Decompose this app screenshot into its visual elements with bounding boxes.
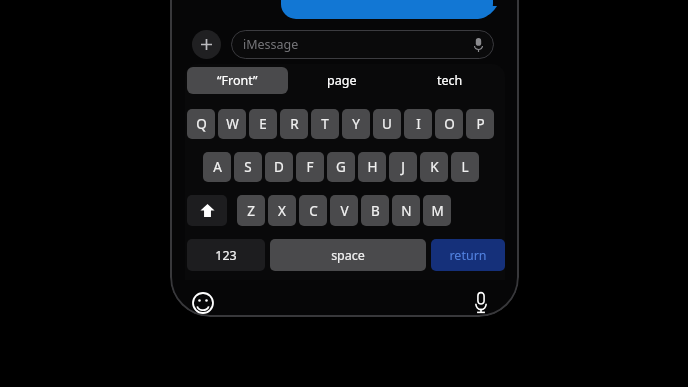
staticText: S [244, 158, 252, 176]
button[interactable]: “Front” [187, 67, 288, 94]
button[interactable]: H [358, 152, 386, 182]
button[interactable]: Add attachment [192, 30, 221, 59]
staticText: R [290, 115, 299, 133]
staticText: E [259, 115, 267, 133]
staticText: C [309, 202, 318, 220]
button[interactable]: R [280, 109, 308, 139]
staticText: M [431, 202, 444, 220]
staticText: D [274, 158, 284, 176]
button[interactable]: V [330, 195, 358, 226]
staticText: J [401, 158, 405, 176]
staticText: L [461, 158, 469, 176]
staticText: G [336, 158, 346, 176]
staticText: return [449, 247, 487, 264]
staticText: Q [196, 115, 207, 133]
staticText: U [382, 115, 392, 133]
staticText: iMessage [243, 36, 299, 53]
button[interactable]: 123 [187, 239, 265, 271]
staticText: “Front” [217, 72, 258, 89]
button[interactable]: O [435, 109, 463, 139]
button[interactable]: C [299, 195, 327, 226]
staticText: space [331, 247, 365, 264]
staticText: F [306, 158, 314, 176]
staticText: V [340, 202, 349, 220]
staticText: O [444, 115, 455, 133]
button[interactable]: Voice input [468, 289, 494, 315]
staticText: I [416, 115, 421, 133]
staticText: H [367, 158, 378, 176]
staticText: B [371, 202, 380, 220]
button[interactable]: W [218, 109, 246, 139]
button[interactable]: F [296, 152, 324, 182]
button[interactable]: space [270, 239, 426, 271]
button[interactable]: return [431, 239, 505, 271]
button[interactable]: D [265, 152, 293, 182]
button[interactable]: J [389, 152, 417, 182]
staticText: A [213, 158, 222, 176]
staticText: 123 [215, 247, 237, 264]
button[interactable]: Shift [187, 195, 227, 226]
button[interactable]: page [288, 67, 396, 94]
button[interactable]: A [203, 152, 231, 182]
staticText: Y [352, 115, 360, 133]
other: Dictate [474, 38, 483, 52]
button[interactable]: S [234, 152, 262, 182]
button[interactable]: Emoji keyboard [190, 290, 216, 316]
button[interactable]: Q [187, 109, 215, 139]
staticText: page [327, 72, 357, 89]
button[interactable]: B [361, 195, 389, 226]
button[interactable]: tech [396, 67, 503, 94]
staticText: Z [247, 202, 255, 220]
button[interactable]: M [423, 195, 451, 226]
button[interactable]: T [311, 109, 339, 139]
staticText: tech [437, 72, 463, 89]
button[interactable]: U [373, 109, 401, 139]
button[interactable]: Y [342, 109, 370, 139]
button[interactable]: P [466, 109, 494, 139]
button[interactable]: G [327, 152, 355, 182]
staticText: W [226, 115, 239, 133]
button[interactable]: L [451, 152, 479, 182]
button[interactable]: X [268, 195, 296, 226]
staticText: X [278, 202, 286, 220]
staticText: P [476, 115, 485, 133]
button[interactable]: I [404, 109, 432, 139]
button[interactable]: E [249, 109, 277, 139]
button[interactable]: N [392, 195, 420, 226]
button[interactable]: Z [237, 195, 265, 226]
staticText: N [401, 202, 412, 220]
staticText: T [321, 115, 329, 133]
button[interactable]: iMessage [231, 30, 494, 59]
staticText: K [430, 158, 439, 176]
button[interactable]: K [420, 152, 448, 182]
